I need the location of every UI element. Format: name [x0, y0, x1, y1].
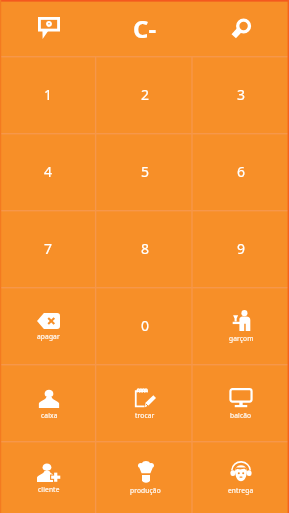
staticText: C-: [133, 12, 157, 45]
button[interactable]: 0: [97, 287, 193, 364]
button[interactable]: balcão: [193, 364, 289, 441]
button[interactable]: 4: [0, 133, 97, 210]
staticText: 8: [141, 239, 150, 258]
staticText: 5: [141, 162, 150, 181]
staticText: 0: [141, 316, 150, 335]
staticText: caixa: [41, 411, 58, 420]
button[interactable]: trocar: [97, 364, 193, 441]
staticText: balcão: [230, 411, 252, 420]
button[interactable]: 2: [97, 56, 193, 133]
staticText: 4: [44, 162, 53, 181]
staticText: entrega: [228, 486, 254, 495]
button[interactable]: produção: [97, 441, 193, 513]
button[interactable]: 8: [97, 210, 193, 287]
staticText: 1: [44, 85, 53, 104]
button[interactable]: entrega: [193, 441, 289, 513]
button[interactable]: Search: [193, 0, 289, 56]
button[interactable]: Messages: [0, 0, 97, 56]
button[interactable]: caixa: [0, 364, 97, 441]
button[interactable]: 5: [97, 133, 193, 210]
staticText: trocar: [135, 411, 155, 420]
staticText: 9: [237, 239, 246, 258]
staticText: produção: [130, 486, 161, 495]
staticText: 3: [237, 85, 246, 104]
staticText: apagar: [37, 332, 60, 341]
button[interactable]: cliente: [0, 441, 97, 513]
staticText: cliente: [38, 485, 60, 494]
staticText: 2: [141, 85, 150, 104]
button[interactable]: apagar: [0, 287, 97, 364]
button[interactable]: 9: [193, 210, 289, 287]
staticText: 7: [44, 239, 53, 258]
button[interactable]: C-: [97, 0, 193, 56]
staticText: 6: [237, 162, 246, 181]
button[interactable]: 6: [193, 133, 289, 210]
staticText: garçom: [229, 334, 254, 343]
button[interactable]: garçom: [193, 287, 289, 364]
button[interactable]: 3: [193, 56, 289, 133]
button[interactable]: 1: [0, 56, 97, 133]
button[interactable]: 7: [0, 210, 97, 287]
